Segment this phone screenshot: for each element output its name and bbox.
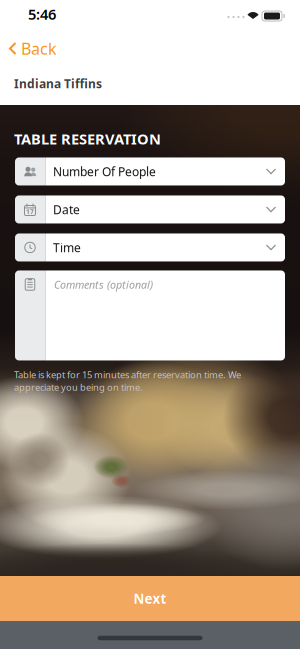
button[interactable]: Number Of People: [15, 157, 285, 185]
staticText: Indiana Tiffins: [14, 75, 102, 91]
button[interactable]: Back: [0, 38, 57, 59]
staticText: Next: [133, 590, 166, 607]
staticText: Number Of People: [53, 163, 156, 179]
button[interactable]: Comments (optional): [15, 270, 285, 360]
staticText: Time: [53, 239, 81, 255]
staticText: 17: [26, 207, 34, 216]
button[interactable]: 17: [15, 195, 285, 223]
button[interactable]: Next: [0, 576, 300, 621]
staticText: Date: [53, 201, 80, 217]
staticText: 5:46: [28, 4, 56, 24]
staticText: TABLE RESERVATION: [14, 129, 161, 148]
staticText: Table is kept for 15 minutes after reser…: [14, 368, 241, 393]
staticText: Back: [21, 38, 57, 59]
staticText: Comments (optional): [54, 277, 153, 292]
button[interactable]: Time: [15, 233, 285, 261]
